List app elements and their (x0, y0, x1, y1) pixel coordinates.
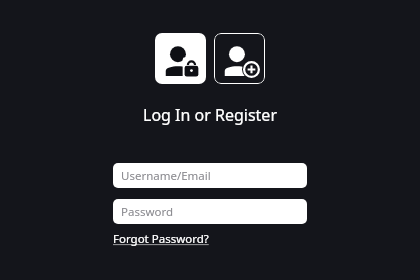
button[interactable]: Forgot Password? (113, 231, 209, 247)
button[interactable]: Password (113, 199, 307, 224)
button[interactable]: Register (214, 33, 265, 84)
staticText: Log In or Register (143, 104, 278, 126)
button[interactable]: Log In (155, 33, 206, 84)
button[interactable]: Username/Email (113, 163, 307, 188)
staticText: Forgot Password? (113, 231, 209, 247)
staticText: Password (121, 204, 174, 220)
staticText: Username/Email (121, 168, 211, 184)
